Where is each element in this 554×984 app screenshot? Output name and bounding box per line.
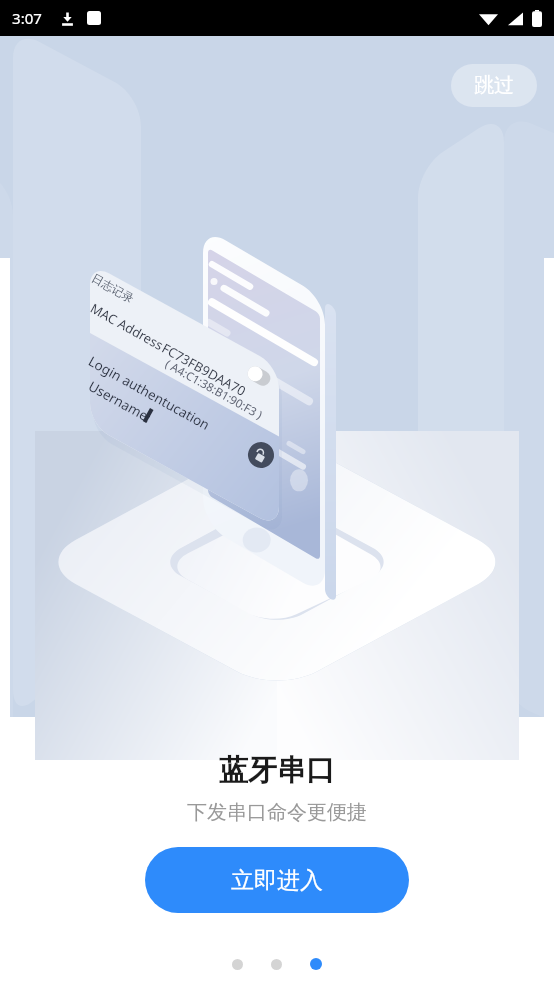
staticText: 3:07 (12, 8, 42, 28)
button[interactable] (232, 959, 243, 970)
button[interactable]: 跳过 (451, 64, 537, 107)
button[interactable] (271, 959, 282, 970)
staticText: 蓝牙串口 (219, 752, 335, 789)
staticText: 下发串口命令更便捷 (187, 800, 367, 825)
button[interactable] (310, 958, 322, 970)
staticText: 跳过 (474, 73, 514, 98)
staticText: 立即进入 (231, 866, 323, 895)
button[interactable]: 立即进入 (145, 847, 409, 913)
